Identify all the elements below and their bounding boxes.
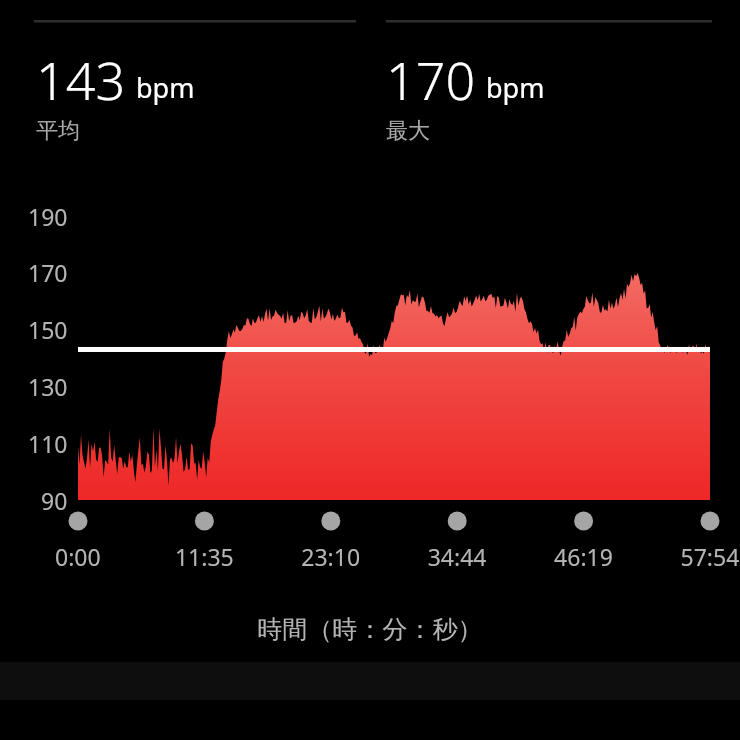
button[interactable]: Heart rate chart <box>0 0 740 740</box>
